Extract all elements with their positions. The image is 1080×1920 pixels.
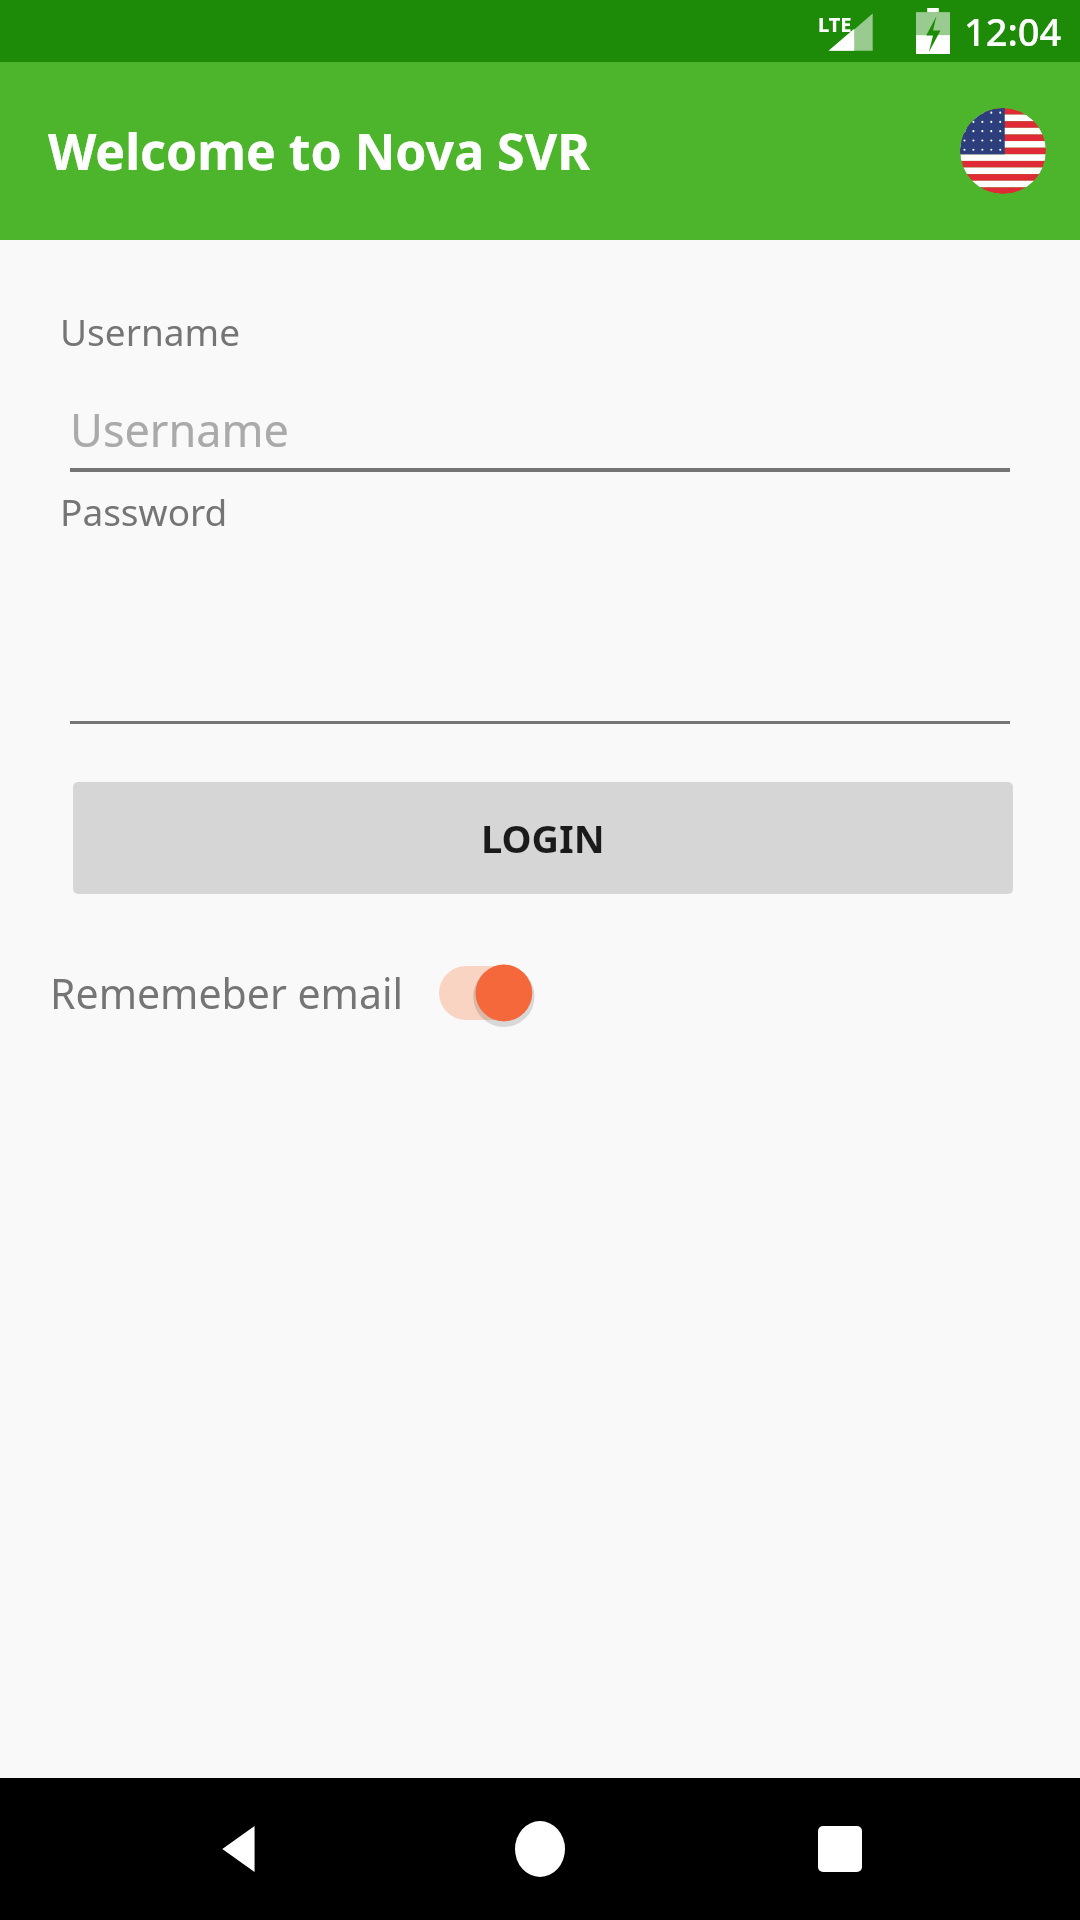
staticText: Password	[60, 486, 228, 536]
staticText: LTE	[818, 11, 852, 38]
staticText: Username	[60, 306, 241, 356]
staticText: LOGIN	[481, 812, 605, 864]
button[interactable]: Username	[70, 394, 1010, 472]
button[interactable]: Select language	[960, 108, 1046, 194]
button[interactable]: Home	[480, 1789, 600, 1909]
button[interactable]: Back	[180, 1789, 300, 1909]
button[interactable]	[70, 646, 1010, 724]
staticText: Username	[70, 399, 289, 460]
button[interactable]: Recent apps	[780, 1789, 900, 1909]
button[interactable]: LOGIN	[73, 782, 1013, 894]
staticText: Rememeber email	[50, 965, 404, 1021]
staticText: 12:04	[964, 5, 1062, 57]
button[interactable]: Rememeber email	[50, 946, 549, 1040]
staticText: Welcome to Nova SVR	[48, 117, 590, 185]
